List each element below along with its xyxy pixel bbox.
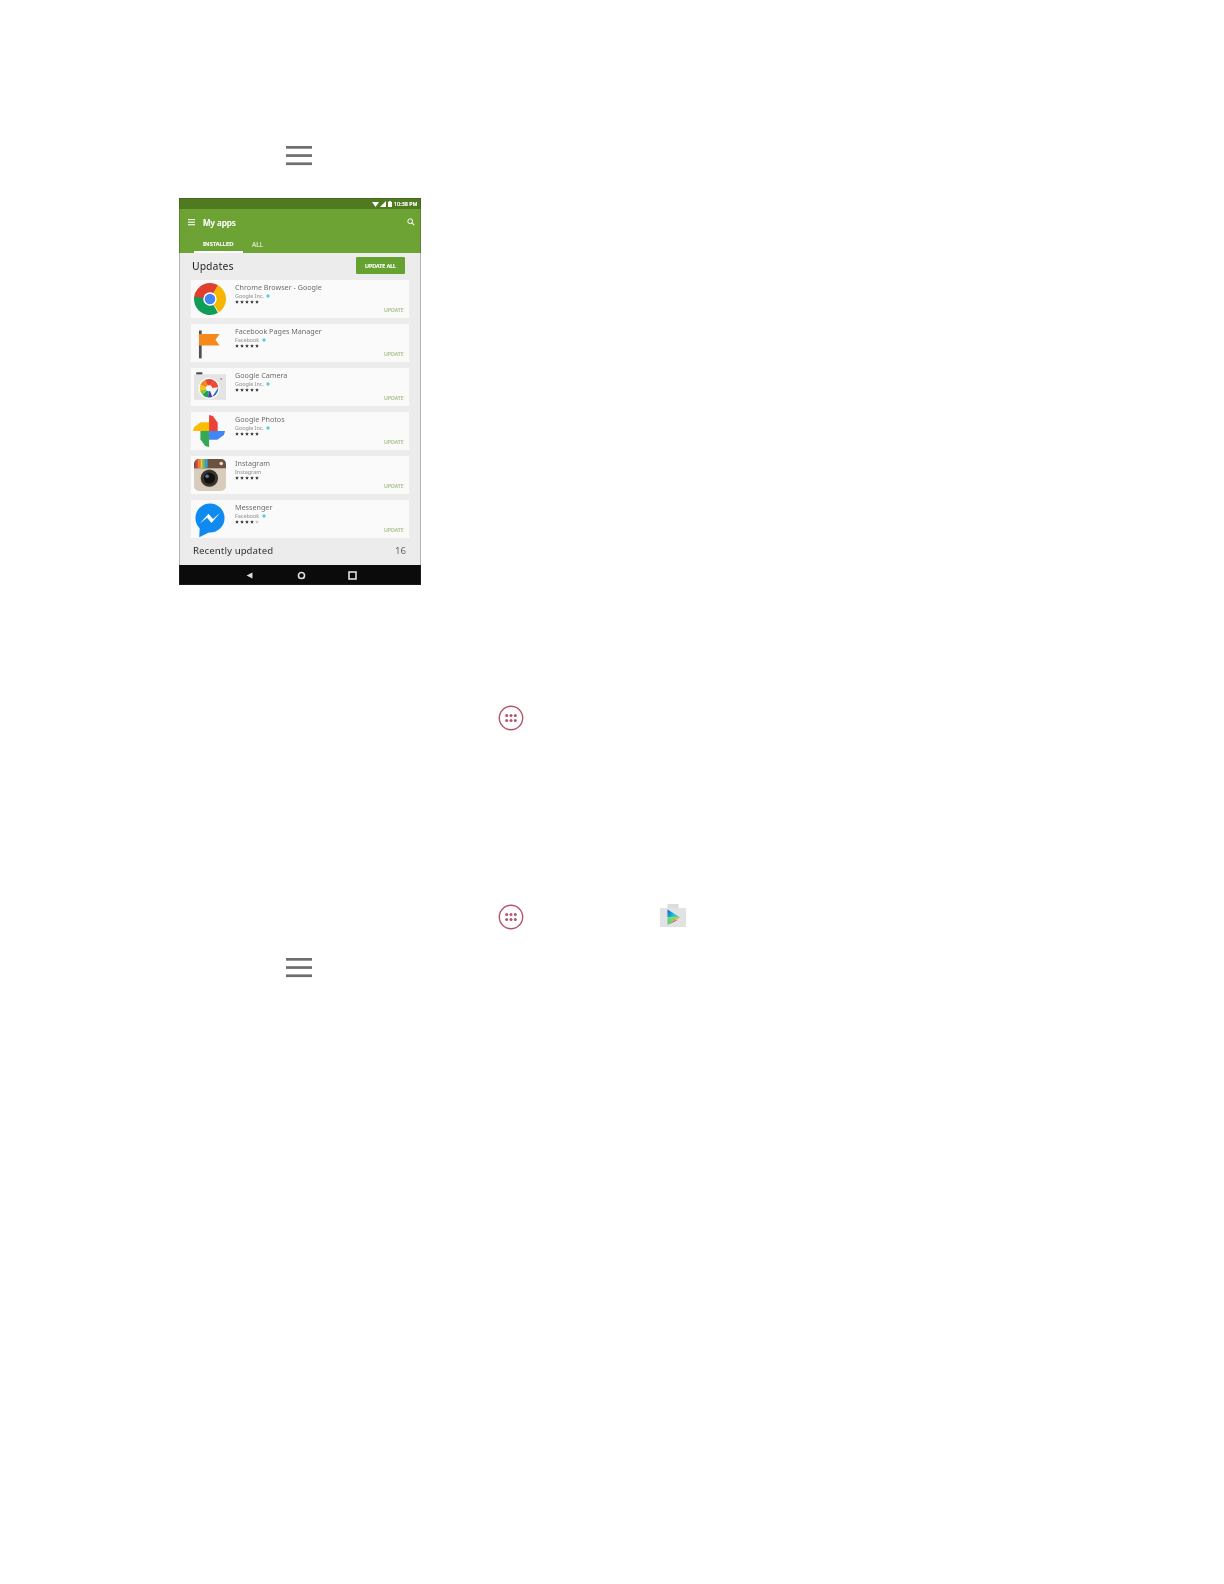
button[interactable]: Recents <box>343 566 361 584</box>
button[interactable]: Menu <box>284 143 313 166</box>
button[interactable]: Play Store <box>658 901 688 929</box>
button[interactable]: Home <box>292 566 310 584</box>
staticText: ALL <box>252 240 264 249</box>
button[interactable]: INSTALLED <box>194 235 243 253</box>
staticText: UPDATE <box>384 394 404 401</box>
staticText: Updates <box>192 259 234 273</box>
button[interactable]: Instagram <box>191 456 409 494</box>
button[interactable]: Back <box>240 566 258 584</box>
staticText: 16 <box>395 544 406 557</box>
staticText: Google Inc. <box>235 292 264 299</box>
staticText: Google Camera <box>235 370 288 380</box>
staticText: Facebook <box>235 512 260 519</box>
staticText: Chrome Browser - Google <box>235 282 322 292</box>
staticText: UPDATE <box>384 438 404 445</box>
button[interactable]: Facebook Pages Manager <box>191 324 409 362</box>
staticText: Google Inc. <box>235 424 264 431</box>
staticText: Google Inc. <box>235 380 264 387</box>
staticText: Facebook Pages Manager <box>235 326 322 336</box>
button[interactable]: Navigation menu <box>179 209 203 235</box>
button[interactable]: All apps <box>498 904 524 930</box>
staticText: Instagram <box>235 458 270 468</box>
button[interactable]: Google Camera <box>191 368 409 406</box>
staticText: Recently updated <box>193 544 274 557</box>
button[interactable]: ALL <box>233 235 282 253</box>
staticText: Facebook <box>235 336 260 343</box>
button[interactable]: Chrome Browser - Google <box>191 280 409 318</box>
staticText: UPDATE ALL <box>365 262 396 269</box>
button[interactable]: Messenger <box>191 500 409 538</box>
staticText: UPDATE <box>384 306 404 313</box>
button[interactable]: UPDATE ALL <box>356 257 405 274</box>
staticText: Messenger <box>235 502 273 512</box>
staticText: INSTALLED <box>203 240 234 248</box>
staticText: UPDATE <box>384 350 404 357</box>
staticText: UPDATE <box>384 482 404 489</box>
staticText: Instagram <box>235 468 262 475</box>
button[interactable]: Search <box>401 209 421 235</box>
button[interactable]: All apps <box>498 705 524 731</box>
staticText: Google Photos <box>235 414 285 424</box>
staticText: My apps <box>203 217 236 228</box>
staticText: UPDATE <box>384 526 404 533</box>
staticText: 10:38 PM <box>394 200 418 207</box>
button[interactable]: Google Photos <box>191 412 409 450</box>
button[interactable]: Menu <box>284 955 313 978</box>
